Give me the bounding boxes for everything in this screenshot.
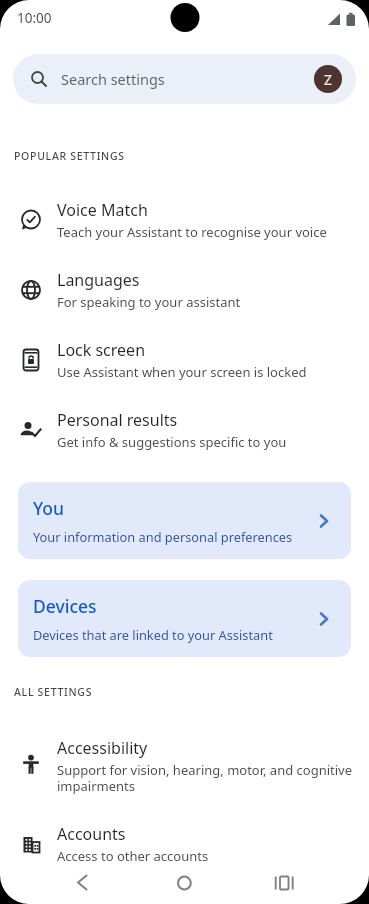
staticText: You [33, 496, 65, 520]
button[interactable]: Voice Match [0, 185, 369, 255]
staticText: ALL SETTINGS [14, 685, 93, 699]
button[interactable]: You [18, 482, 351, 559]
staticText: Support for vision, hearing, motor, and … [57, 761, 353, 794]
staticText: Get info & suggestions specific to you [57, 433, 287, 451]
staticText: Z [324, 70, 333, 89]
button[interactable] [123, 856, 246, 904]
staticText: Search settings [61, 69, 165, 89]
staticText: Personal results [57, 409, 178, 431]
staticText: Lock screen [57, 339, 146, 361]
staticText: POPULAR SETTINGS [14, 149, 125, 163]
staticText: Accounts [57, 823, 126, 845]
staticText: Languages [57, 269, 140, 291]
staticText: Use Assistant when your screen is locked [57, 363, 307, 381]
button[interactable]: Lock screen [0, 325, 369, 395]
button[interactable]: Languages [0, 255, 369, 325]
staticText: 10:00 [17, 9, 52, 27]
staticText: Your information and personal preference… [33, 528, 293, 545]
button[interactable]: Z [314, 65, 342, 93]
staticText: Voice Match [57, 199, 148, 221]
button[interactable] [0, 856, 123, 904]
button[interactable]: Personal results [0, 395, 369, 465]
button[interactable]: Search settings [13, 54, 356, 104]
button[interactable]: Accessibility [0, 721, 369, 809]
staticText: Accessibility [57, 737, 148, 759]
staticText: Devices [33, 594, 97, 618]
button[interactable]: Devices [18, 580, 351, 657]
staticText: Devices that are linked to your Assistan… [33, 626, 273, 643]
staticText: Access to other accounts [57, 847, 209, 865]
staticText: Teach your Assistant to recognise your v… [57, 223, 327, 241]
button[interactable] [246, 856, 369, 904]
button[interactable]: Accounts [0, 809, 369, 879]
staticText: For speaking to your assistant [57, 293, 241, 311]
